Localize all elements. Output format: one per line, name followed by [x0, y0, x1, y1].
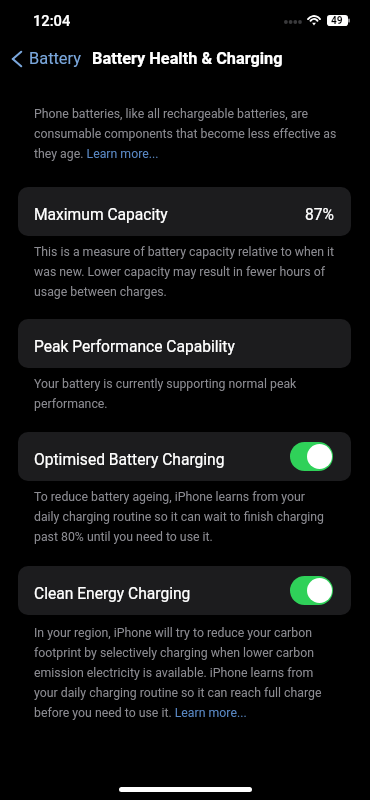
button[interactable]: Peak Performance Capability — [18, 319, 351, 368]
staticText: This is a measure of battery capacity re… — [34, 240, 338, 300]
staticText: 87% — [305, 206, 334, 224]
staticText: Clean Energy Charging — [34, 585, 191, 603]
button[interactable]: Optimised Battery Charging — [18, 432, 351, 481]
staticText: Your battery is currently supporting nor… — [34, 372, 338, 412]
staticText: Battery — [29, 49, 81, 68]
staticText: 12:04 — [33, 12, 71, 29]
button[interactable]: Clean Energy Charging — [18, 566, 351, 615]
button[interactable]: Maximum Capacity — [18, 187, 351, 236]
staticText: Optimised Battery Charging — [34, 451, 225, 469]
other: Toggle — [290, 576, 333, 605]
staticText: Battery Health & Charging — [92, 49, 283, 68]
staticText: In your region, iPhone will try to reduc… — [34, 621, 338, 721]
staticText: 49 — [331, 15, 343, 26]
staticText: Phone batteries, like all rechargeable b… — [34, 102, 338, 162]
staticText: Maximum Capacity — [34, 206, 168, 224]
button[interactable]: Battery — [0, 49, 87, 68]
staticText: Peak Performance Capability — [34, 338, 235, 356]
staticText: To reduce battery ageing, iPhone learns … — [34, 485, 332, 545]
other: Toggle — [290, 442, 333, 471]
